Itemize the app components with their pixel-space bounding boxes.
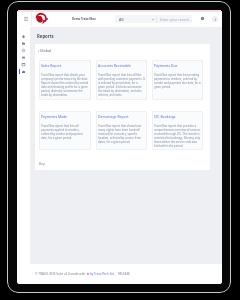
staticText: by TravelTech Sol. xyxy=(90,272,115,276)
button[interactable]: Settings xyxy=(199,15,206,22)
button[interactable]: Account xyxy=(212,16,218,22)
button[interactable]: Demurrage Report xyxy=(96,111,147,150)
staticText: Global xyxy=(40,48,52,53)
button[interactable]: Payments Made xyxy=(39,111,91,150)
staticText: Travel Box report that provides a compre… xyxy=(154,124,201,148)
button[interactable]: Accounts Receivable xyxy=(96,60,147,100)
staticText: RELEASE xyxy=(118,272,131,276)
staticText: Travel Box report that lists all files w… xyxy=(98,73,145,97)
staticText: Payments Due xyxy=(154,63,178,68)
staticText: Demurrage Report xyxy=(98,114,129,119)
staticText: Travel Box report that details your comp… xyxy=(41,73,89,97)
staticText: Sales Report xyxy=(41,63,62,68)
button[interactable]: Payments Due xyxy=(152,60,203,100)
button[interactable]: CIC Bookings xyxy=(152,111,203,150)
staticText: Travel Box report that shows how many ni… xyxy=(98,124,145,144)
staticText: CIC Bookings xyxy=(154,114,176,119)
button[interactable]: Reports xyxy=(17,47,30,54)
staticText: Key xyxy=(39,161,45,166)
staticText: Travel Box report that lists all payment… xyxy=(41,124,89,140)
staticText: Accounts Receivable xyxy=(98,63,132,68)
staticText: Demo Travel Box xyxy=(72,17,96,21)
button[interactable]: Menu xyxy=(21,14,30,23)
staticText: Travel Box report that lists pending pay… xyxy=(154,73,201,89)
button[interactable]: All xyxy=(115,15,192,23)
button[interactable]: Files xyxy=(17,40,30,47)
button[interactable]: Analytics xyxy=(17,68,30,75)
staticText: All xyxy=(119,17,124,22)
button[interactable]: Sales Report xyxy=(39,60,91,100)
button[interactable]: Calendar xyxy=(17,61,30,68)
staticText: Payments Made xyxy=(41,114,68,119)
button[interactable]: Home xyxy=(17,33,30,40)
button[interactable]: Reports xyxy=(37,33,54,39)
button[interactable]: Global xyxy=(38,48,52,53)
staticText: Enter your search... xyxy=(160,17,192,22)
button[interactable]: Shipments xyxy=(17,54,30,61)
staticText: © TRAVEL BOX Suite v2.0 made with xyxy=(35,272,86,276)
